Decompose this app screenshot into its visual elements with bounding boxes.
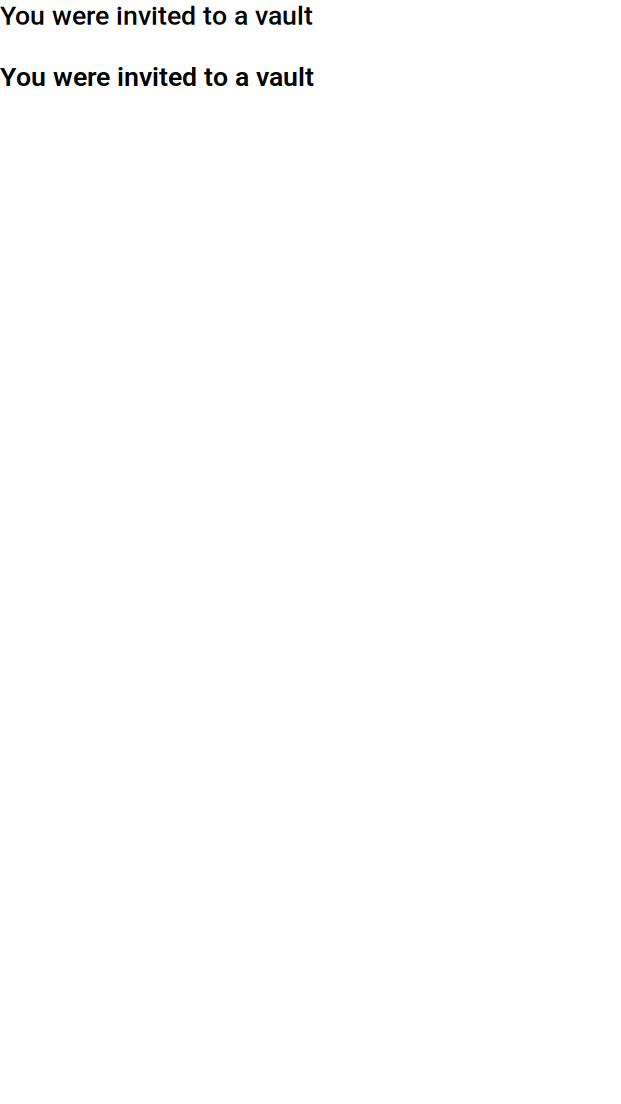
staticText: You were invited to a vault: [0, 61, 314, 93]
staticText: You were invited to a vault: [0, 0, 313, 31]
